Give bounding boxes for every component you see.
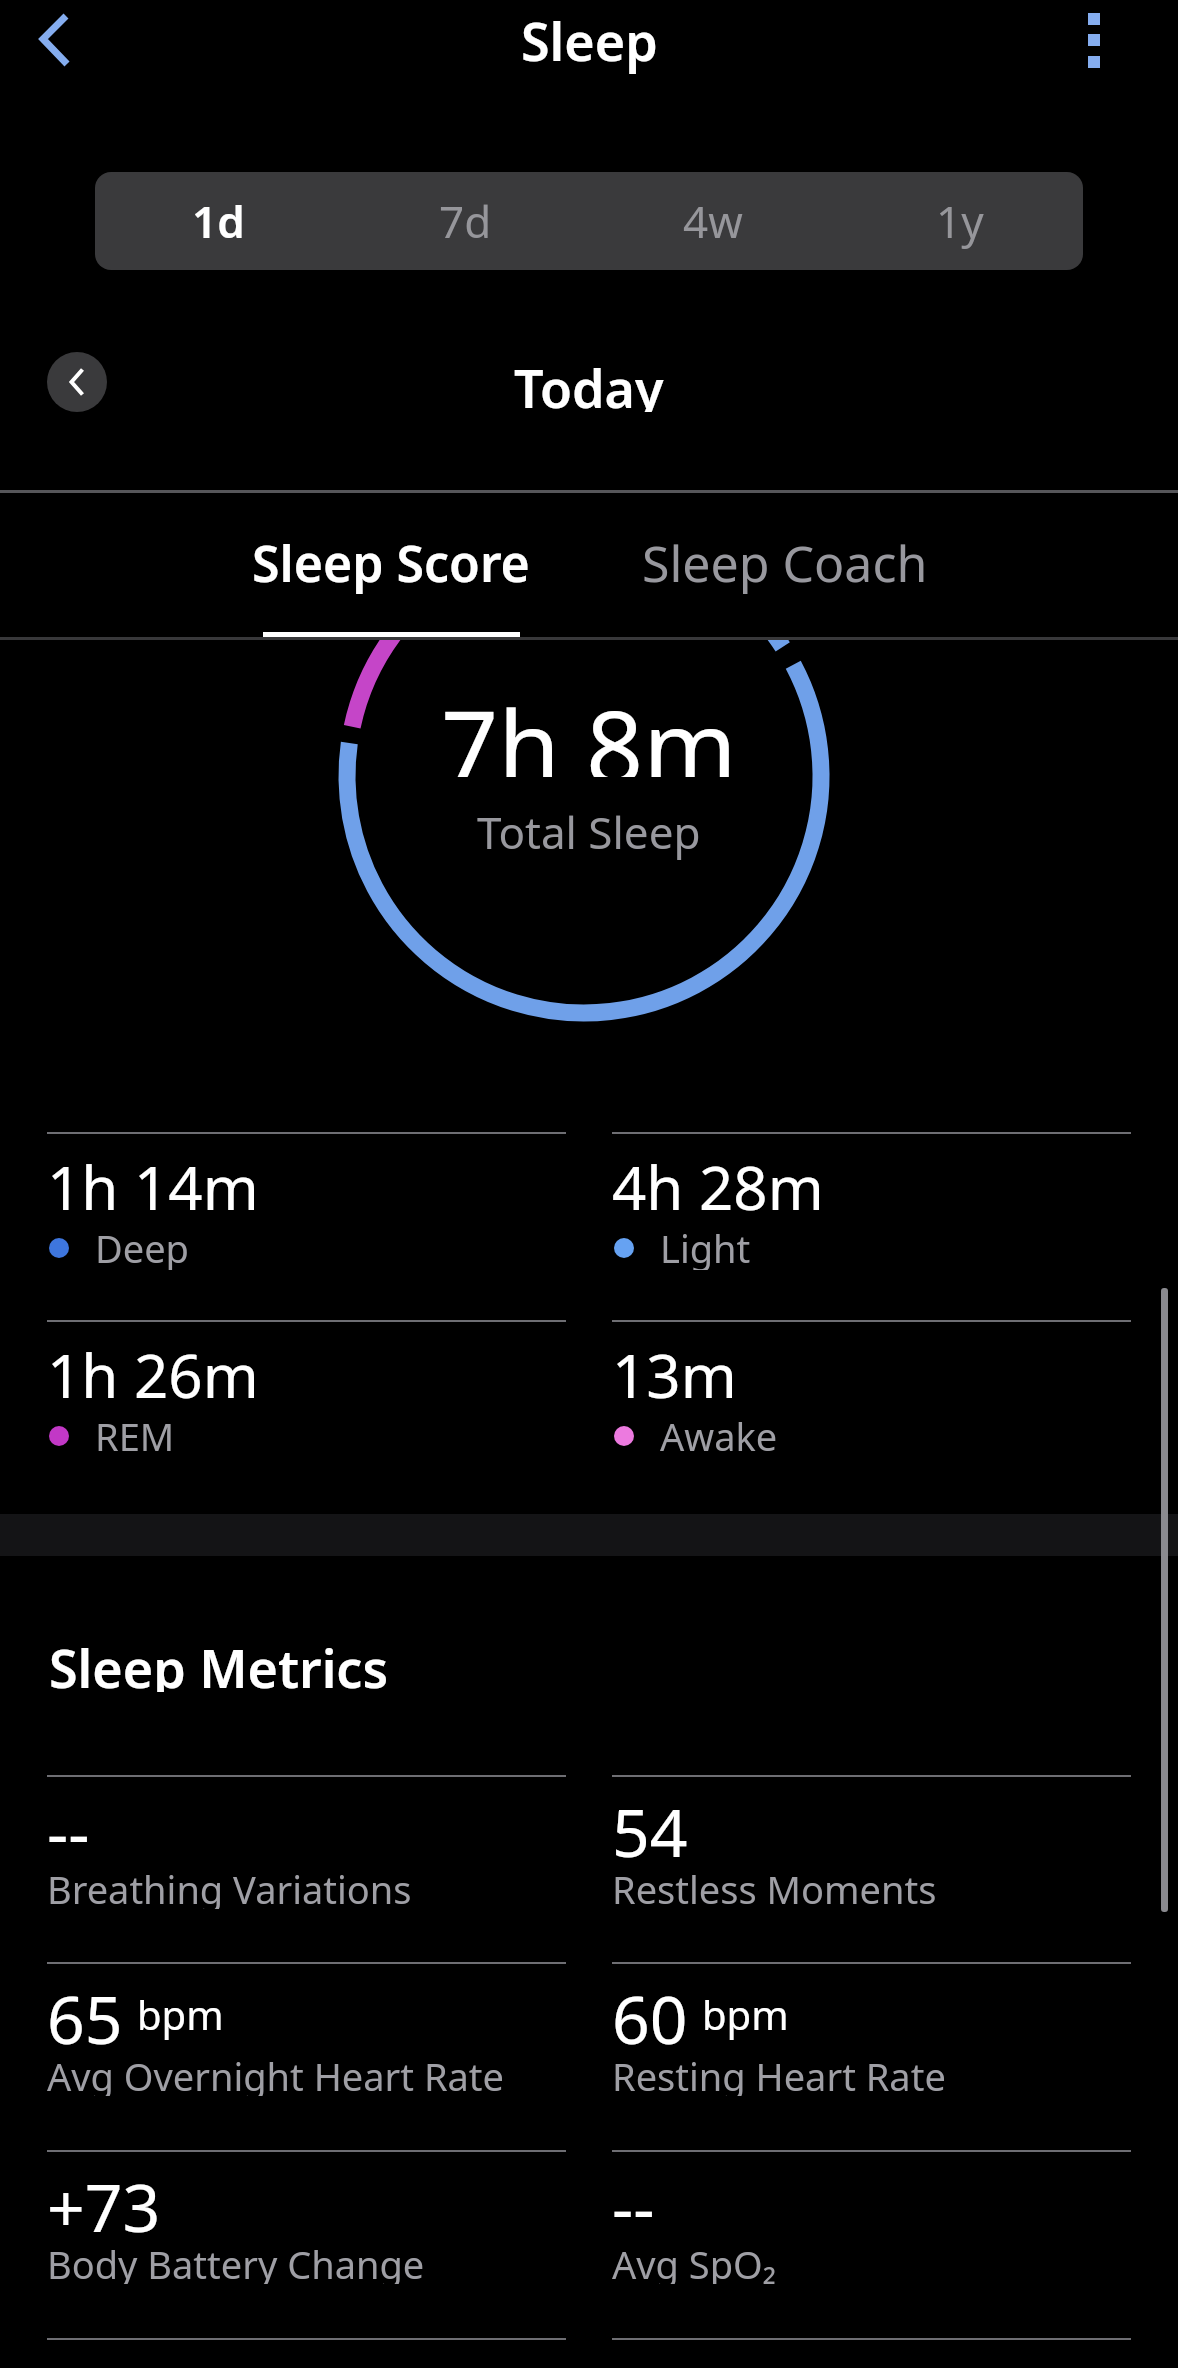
staticText: Body Battery Change (47, 2238, 425, 2284)
staticText: Sleep Metrics (49, 1632, 389, 1692)
staticText: 4h 28m (612, 1146, 824, 1220)
staticText: bpm (702, 1987, 789, 2041)
staticText: -- (47, 1786, 90, 1860)
button[interactable]: Sleep Coach (625, 498, 945, 628)
button[interactable]: 1y (836, 172, 1083, 270)
staticText: REM (95, 1410, 175, 1458)
staticText: 1y (936, 191, 984, 251)
staticText: bpm (137, 1987, 224, 2041)
button[interactable]: 4w (589, 172, 836, 270)
staticText: 7h 8m (441, 677, 737, 777)
staticText: Breathing Variations (47, 1863, 412, 1909)
staticText: Today (514, 352, 664, 412)
staticText: 13m (612, 1334, 737, 1408)
staticText: 60 (612, 1973, 688, 2047)
staticText: Avg SpO₂ (612, 2238, 777, 2284)
staticText: 54 (612, 1786, 688, 1860)
button[interactable]: 7d (342, 172, 589, 270)
button[interactable] (47, 352, 107, 412)
staticText: 1h 26m (47, 1334, 259, 1408)
staticText: 7d (439, 191, 492, 251)
button[interactable]: Sleep Score (231, 498, 551, 628)
staticText: 1d (192, 191, 245, 251)
staticText: -- (612, 2161, 655, 2235)
staticText: +73 (47, 2161, 161, 2235)
staticText: 65 (47, 1973, 123, 2047)
staticText: Awake (660, 1410, 778, 1458)
staticText: Sleep Coach (642, 529, 928, 597)
button[interactable] (12, 0, 98, 80)
staticText: 4w (683, 191, 743, 251)
staticText: Avg Overnight Heart Rate (47, 2050, 504, 2096)
staticText: 1h 14m (47, 1146, 259, 1220)
staticText: Sleep Score (252, 529, 530, 597)
button[interactable] (1040, 0, 1148, 80)
staticText: Deep (95, 1222, 189, 1270)
button[interactable]: 1d (95, 172, 342, 270)
staticText: Resting Heart Rate (612, 2050, 946, 2096)
staticText: Restless Moments (612, 1863, 937, 1909)
staticText: Light (660, 1222, 751, 1270)
staticText: Sleep (521, 5, 658, 76)
staticText: Total Sleep (477, 802, 701, 862)
